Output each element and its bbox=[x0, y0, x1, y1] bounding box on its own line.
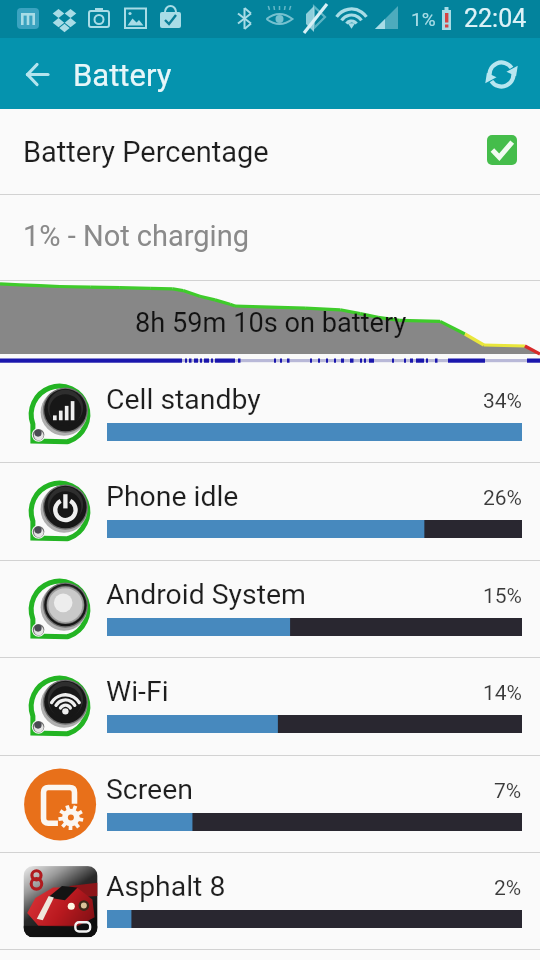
staticText: Screen bbox=[106, 773, 193, 806]
staticText: Asphalt 8 bbox=[106, 870, 226, 903]
staticText: 15% bbox=[483, 584, 522, 609]
staticText: Phone idle bbox=[106, 480, 239, 513]
staticText: 1% - Not charging bbox=[23, 219, 249, 253]
button[interactable]: Phone idle bbox=[0, 463, 540, 560]
staticText: Battery bbox=[73, 57, 172, 93]
staticText: Android System bbox=[106, 578, 306, 611]
staticText: 34% bbox=[483, 389, 522, 414]
button[interactable]: Android System bbox=[0, 561, 540, 658]
staticText: 7% bbox=[494, 779, 522, 804]
button[interactable]: Battery Percentage bbox=[0, 109, 540, 194]
staticText: 22:04 bbox=[464, 4, 527, 33]
staticText: 1% bbox=[411, 8, 436, 30]
staticText: 14% bbox=[483, 681, 522, 706]
button[interactable]: Asphalt 8 bbox=[0, 853, 540, 950]
button[interactable]: Screen bbox=[0, 756, 540, 853]
button[interactable]: Refresh bbox=[473, 46, 529, 102]
staticText: 26% bbox=[483, 486, 522, 511]
staticText: Wi-Fi bbox=[106, 675, 169, 708]
staticText: Cell standby bbox=[106, 383, 261, 416]
staticText: Battery Percentage bbox=[23, 135, 269, 169]
staticText: 8h 59m 10s on battery bbox=[135, 307, 407, 339]
button[interactable]: Cell standby bbox=[0, 366, 540, 463]
button[interactable]: Wi-Fi bbox=[0, 658, 540, 755]
staticText: 2% bbox=[494, 876, 522, 901]
button[interactable]: Back bbox=[9, 46, 65, 102]
